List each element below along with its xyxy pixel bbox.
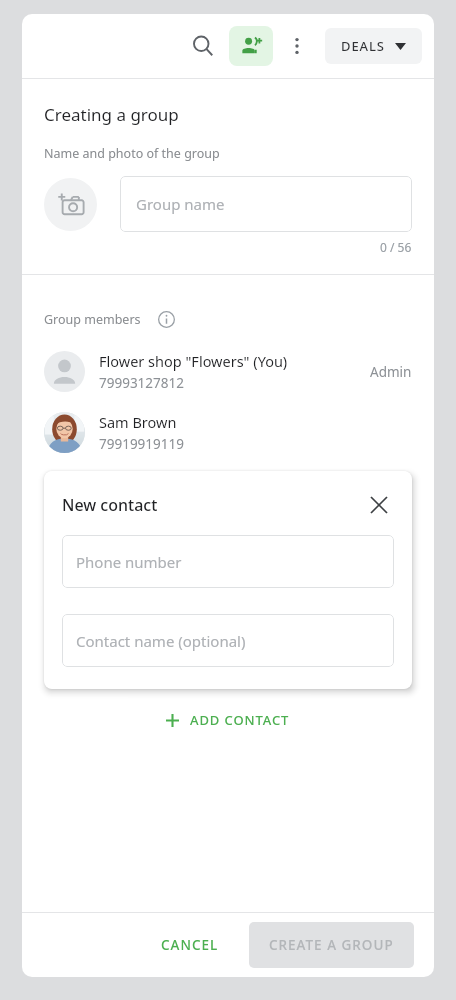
button[interactable]: Contact name (optional) [62, 614, 394, 667]
button[interactable]: More options [277, 26, 317, 66]
staticText: New contact [62, 494, 364, 516]
staticText: Group name [136, 194, 225, 214]
button[interactable]: CANCEL [145, 926, 235, 964]
button[interactable]: Phone number [62, 535, 394, 588]
staticText: 0 / 56 [380, 239, 412, 255]
staticText: Flower shop "Flowers" (You) [99, 351, 288, 371]
button[interactable]: Create group [229, 26, 273, 66]
staticText: Creating a group [44, 103, 179, 126]
staticText: DEALS [341, 37, 385, 55]
button[interactable]: Add group photo [44, 178, 97, 231]
button[interactable]: DEALS [325, 28, 422, 64]
staticText: Sam Brown [99, 412, 177, 432]
staticText: CREATE A GROUP [269, 936, 394, 954]
button[interactable]: Group members info [153, 306, 179, 332]
staticText: 79993127812 [99, 374, 184, 392]
button[interactable]: Flower shop "Flowers" (You) [22, 345, 434, 398]
staticText: Phone number [76, 552, 182, 572]
staticText: Group members [44, 311, 141, 328]
staticText: CANCEL [161, 936, 219, 954]
staticText: Name and photo of the group [44, 145, 220, 162]
button[interactable]: ADD CONTACT [156, 705, 300, 735]
button[interactable]: Sam Brown [22, 406, 434, 459]
staticText: Contact name (optional) [76, 631, 246, 651]
button[interactable]: Search [181, 24, 225, 68]
button[interactable]: Group name [120, 176, 412, 232]
staticText: 79919919119 [99, 435, 184, 453]
staticText: Admin [370, 363, 412, 381]
button[interactable]: Close [364, 490, 394, 520]
button[interactable]: CREATE A GROUP [249, 922, 414, 968]
staticText: ADD CONTACT [190, 711, 290, 729]
